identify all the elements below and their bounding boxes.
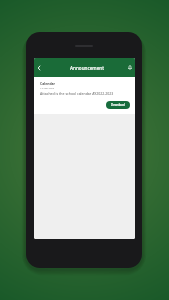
button[interactable]: Download [106, 101, 130, 109]
button[interactable]: Notifications [125, 58, 135, 77]
staticText: Calendar [40, 81, 56, 86]
staticText: Download [111, 103, 125, 107]
staticText: Announcement [70, 65, 104, 71]
staticText: 13 Sep 2022 [40, 86, 55, 89]
staticText: Attached is the school calendar AY2022-2… [40, 91, 114, 96]
button[interactable]: Back [34, 58, 43, 77]
